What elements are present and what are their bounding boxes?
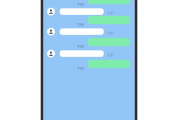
staticText: 9:41 [107,30,114,36]
staticText: 9:42 [77,1,84,7]
button[interactable]: 9:41 [47,8,115,16]
staticText: 9:42 [77,43,84,49]
staticText: 9:42 [77,21,84,27]
button[interactable]: 9:42 [74,0,130,4]
staticText: 9:42 [77,65,84,71]
button[interactable]: 9:42 [74,38,130,46]
staticText: 9:41 [107,10,114,16]
button[interactable]: 9:41 [47,50,115,58]
button[interactable]: 9:42 [74,16,130,24]
button[interactable]: 9:42 [74,60,130,68]
staticText: 9:41 [107,52,114,58]
button[interactable]: 9:41 [47,28,115,36]
